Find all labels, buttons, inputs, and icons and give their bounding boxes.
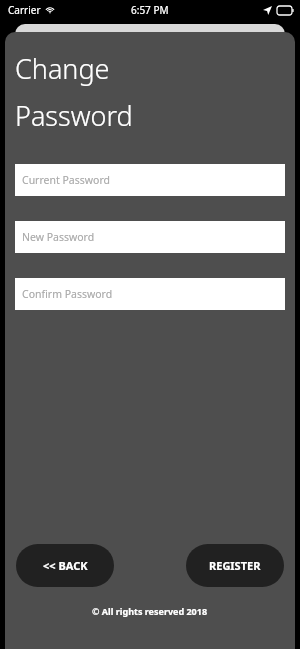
staticText: Carrier (8, 3, 41, 17)
other: Location (263, 6, 272, 15)
button[interactable]: REGISTER (186, 544, 284, 587)
staticText: 6:57 PM (131, 3, 169, 17)
staticText: REGISTER (209, 558, 261, 573)
staticText: New Password (22, 230, 95, 244)
button[interactable]: Confirm Password (15, 278, 285, 310)
staticText: << BACK (43, 558, 88, 573)
button[interactable]: << BACK (16, 544, 114, 587)
other: Battery (277, 6, 294, 15)
staticText: Current Password (22, 173, 111, 187)
button[interactable]: New Password (15, 221, 285, 253)
staticText: Confirm Password (22, 287, 113, 301)
staticText: © All rights reserved 2018 (92, 605, 208, 617)
staticText: Password (15, 97, 133, 134)
staticText: Change (15, 50, 110, 87)
button[interactable]: Current Password (15, 164, 285, 196)
